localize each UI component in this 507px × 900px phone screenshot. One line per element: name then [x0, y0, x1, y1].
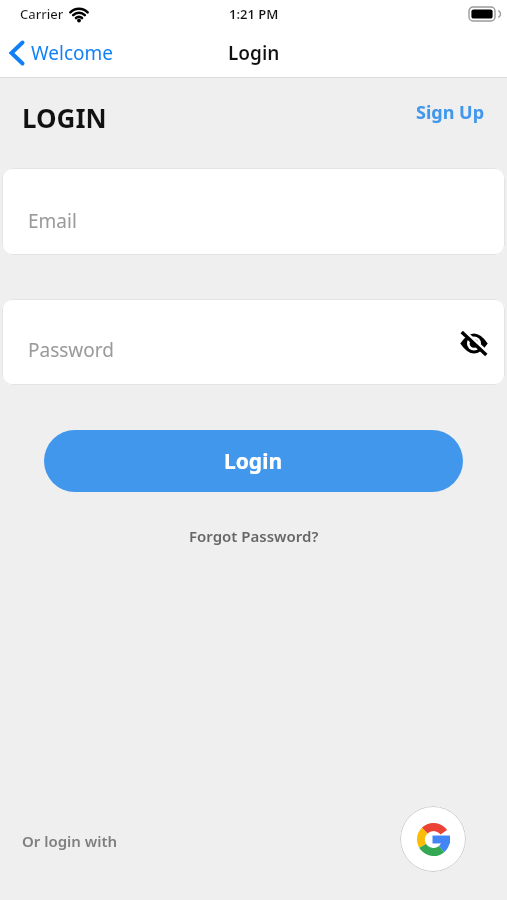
button[interactable]: Welcome — [10, 40, 114, 66]
staticText: Login — [228, 40, 280, 66]
staticText: Forgot Password? — [189, 526, 319, 546]
staticText: Welcome — [31, 40, 114, 66]
button[interactable] — [459, 328, 489, 358]
staticText: Sign Up — [416, 100, 485, 125]
staticText: Login — [224, 447, 283, 476]
staticText: Email — [28, 208, 77, 234]
staticText: Carrier — [20, 5, 64, 23]
staticText: Password — [28, 337, 114, 363]
button[interactable]: Sign Up — [416, 100, 485, 125]
button[interactable]: Password — [2, 299, 505, 385]
button[interactable]: Login — [44, 430, 463, 492]
button[interactable]: Email — [2, 168, 505, 255]
button[interactable]: Forgot Password? — [189, 526, 319, 546]
staticText: LOGIN — [22, 100, 107, 135]
button[interactable] — [400, 806, 466, 872]
staticText: 1:21 PM — [229, 5, 279, 23]
staticText: Or login with — [22, 831, 118, 851]
